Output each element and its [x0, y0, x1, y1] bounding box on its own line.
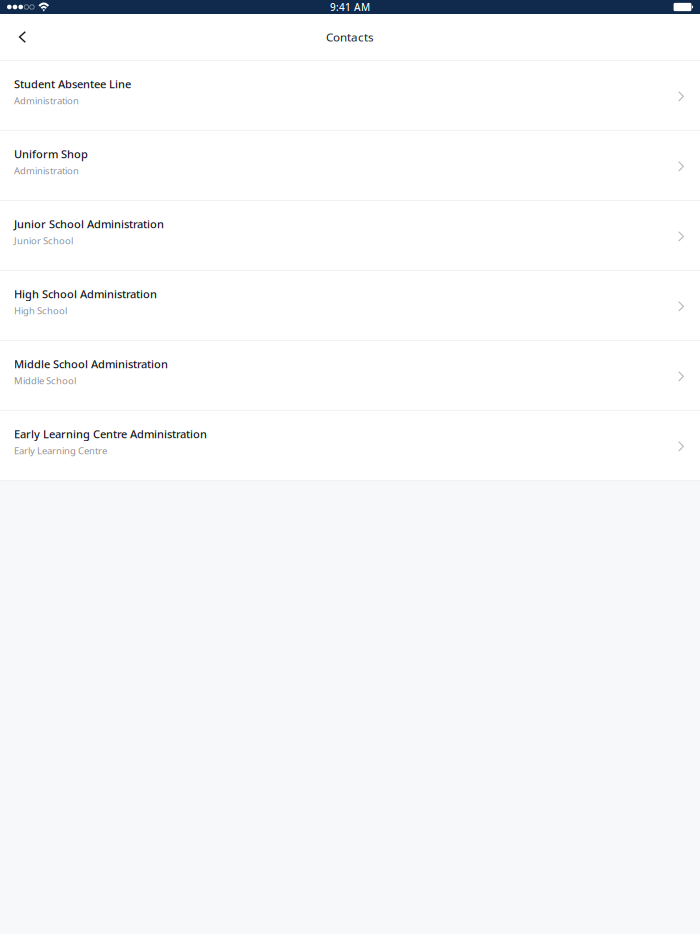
staticText: Middle School Administration — [14, 356, 168, 372]
button[interactable]: Student Absentee Line — [0, 61, 700, 130]
staticText: Administration — [14, 164, 79, 177]
button[interactable]: Back — [0, 14, 44, 60]
staticText: Middle School — [14, 374, 76, 387]
staticText: Contacts — [326, 29, 374, 45]
staticText: Early Learning Centre — [14, 444, 107, 457]
staticText: Uniform Shop — [14, 146, 88, 162]
staticText: High School — [14, 304, 67, 317]
button[interactable]: Junior School Administration — [0, 201, 700, 270]
staticText: Junior School Administration — [14, 216, 164, 232]
button[interactable]: Middle School Administration — [0, 341, 700, 410]
button[interactable]: Early Learning Centre Administration — [0, 411, 700, 480]
staticText: Junior School — [14, 234, 73, 247]
button[interactable]: Uniform Shop — [0, 131, 700, 200]
button[interactable]: High School Administration — [0, 271, 700, 340]
staticText: High School Administration — [14, 286, 157, 302]
staticText: Student Absentee Line — [14, 76, 131, 92]
staticText: Early Learning Centre Administration — [14, 426, 207, 442]
staticText: Administration — [14, 94, 79, 107]
staticText: 9:41 AM — [330, 0, 370, 14]
